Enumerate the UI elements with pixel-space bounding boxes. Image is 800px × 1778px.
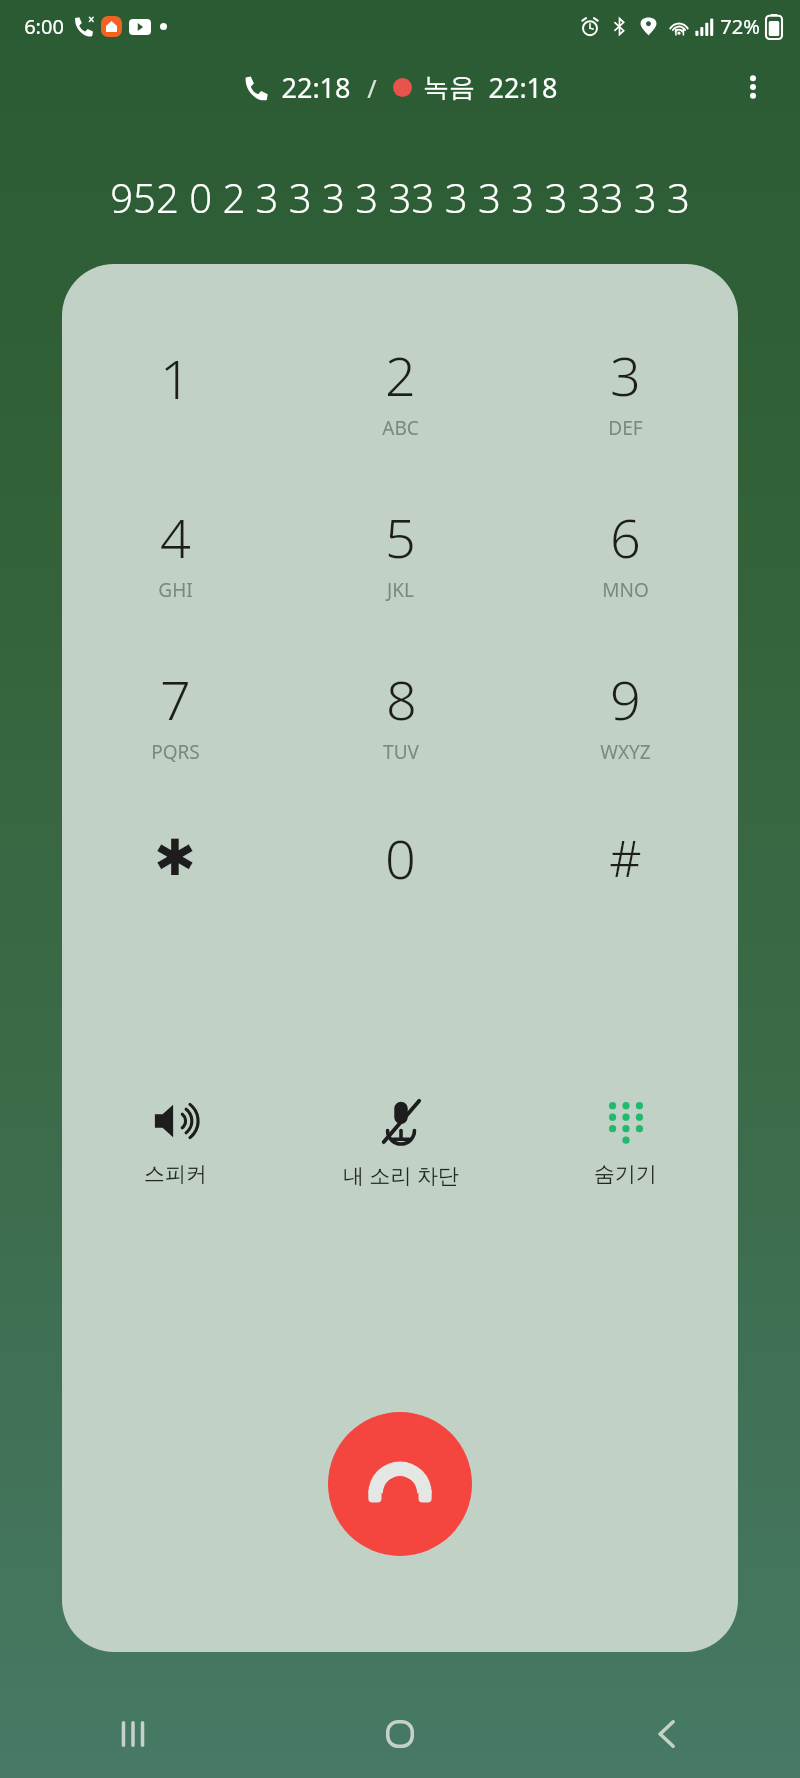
- button[interactable]: ✱: [62, 794, 288, 944]
- staticText: WXYZ: [600, 739, 651, 765]
- staticText: 9: [610, 662, 641, 736]
- button[interactable]: 8: [288, 632, 513, 794]
- staticText: 숨기기: [594, 1161, 657, 1187]
- button[interactable]: Mute: [288, 1097, 513, 1190]
- staticText: /: [367, 71, 377, 105]
- button[interactable]: 6: [513, 470, 738, 632]
- button[interactable]: 0: [288, 794, 513, 944]
- staticText: ✱: [154, 829, 196, 887]
- button[interactable]: Speaker: [62, 1097, 288, 1187]
- staticText: GHI: [158, 577, 193, 603]
- staticText: 6: [610, 500, 641, 574]
- staticText: 스피커: [144, 1161, 207, 1187]
- staticText: 2: [385, 338, 416, 412]
- staticText: 녹음: [423, 71, 475, 104]
- staticText: 952 0 2 3 3 3 3 33 3 3 3 3 33 3 3: [110, 170, 690, 224]
- staticText: 7: [160, 662, 191, 736]
- staticText: 6:00: [24, 13, 64, 40]
- staticText: 5: [385, 500, 416, 574]
- button[interactable]: #: [513, 794, 738, 944]
- button[interactable]: 2: [288, 308, 513, 470]
- button[interactable]: End call: [328, 1412, 472, 1556]
- staticText: 3: [610, 338, 641, 412]
- staticText: 4: [160, 500, 191, 574]
- button[interactable]: 3: [513, 308, 738, 470]
- staticText: MNO: [602, 577, 649, 603]
- button[interactable]: 5: [288, 470, 513, 632]
- button[interactable]: Recents: [0, 1690, 266, 1778]
- staticText: 22:18: [488, 69, 558, 106]
- staticText: 8: [386, 662, 417, 736]
- staticText: PQRS: [151, 739, 200, 765]
- button[interactable]: 7: [62, 632, 288, 794]
- button[interactable]: Back: [533, 1690, 800, 1778]
- staticText: 내 소리 차단: [343, 1161, 459, 1190]
- staticText: 0: [385, 821, 416, 895]
- staticText: #: [609, 824, 642, 892]
- staticText: TUV: [383, 739, 419, 765]
- staticText: 72%: [720, 13, 760, 40]
- button[interactable]: 1: [62, 308, 288, 470]
- button[interactable]: Hide keypad: [513, 1097, 738, 1187]
- staticText: 1: [160, 341, 191, 415]
- button[interactable]: 9: [513, 632, 738, 794]
- button[interactable]: More options: [726, 60, 780, 114]
- staticText: ABC: [382, 415, 419, 441]
- staticText: 22:18: [281, 69, 351, 106]
- staticText: DEF: [608, 415, 643, 441]
- button[interactable]: 4: [62, 470, 288, 632]
- staticText: JKL: [387, 577, 414, 603]
- button[interactable]: Home: [266, 1690, 533, 1778]
